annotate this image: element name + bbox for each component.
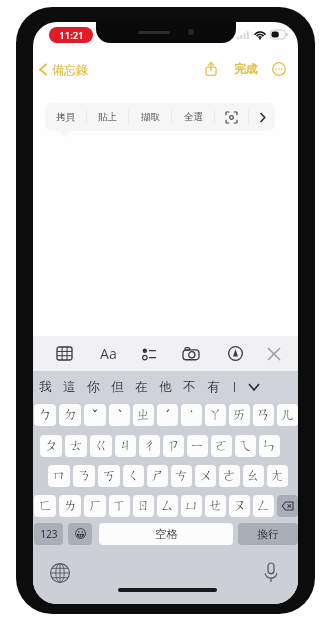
button[interactable]: Emoji — [68, 523, 92, 545]
button[interactable]: ㄏ — [84, 495, 106, 517]
button[interactable]: 他 — [153, 371, 177, 403]
button[interactable]: ㄣ — [259, 435, 280, 457]
button[interactable]: ㄈ — [34, 495, 56, 517]
button[interactable]: ㄍ — [90, 435, 112, 457]
button[interactable]: Hide keyboard — [262, 336, 286, 371]
staticText: 我 — [39, 379, 52, 395]
button[interactable]: Checklist — [137, 336, 161, 371]
staticText: 換行 — [257, 527, 279, 541]
staticText: ˙ — [190, 406, 193, 425]
button[interactable]: More options — [270, 60, 288, 78]
staticText: 你 — [87, 379, 100, 395]
button[interactable]: ㄓ — [133, 404, 154, 426]
button[interactable]: 備忘錄 — [39, 62, 88, 77]
staticText: 他 — [159, 379, 172, 395]
button[interactable]: Insert table — [52, 336, 76, 371]
button[interactable]: 換行 — [238, 523, 298, 545]
staticText: ㄥ — [256, 497, 271, 515]
button[interactable]: 完成 — [234, 62, 257, 76]
button[interactable]: Markup — [223, 336, 247, 371]
button[interactable]: ㄅ — [34, 404, 56, 426]
button[interactable]: ㄟ — [235, 435, 256, 457]
button[interactable]: ˙ — [181, 404, 202, 426]
staticText: ㄍ — [94, 437, 109, 455]
button[interactable]: ㄇ — [48, 465, 70, 487]
button[interactable]: ㄠ — [243, 465, 264, 487]
staticText: ㄚ — [208, 406, 223, 424]
button[interactable]: ㄘ — [171, 465, 192, 487]
staticText: ㄝ — [208, 497, 223, 515]
button[interactable]: 有 — [201, 371, 225, 403]
staticText: ㄉ — [63, 406, 78, 424]
button[interactable]: ㄔ — [139, 435, 160, 457]
button[interactable]: ㄞ — [229, 404, 250, 426]
button[interactable]: ㄡ — [229, 495, 250, 517]
staticText: ㄆ — [44, 437, 59, 455]
button[interactable]: ㄩ — [181, 495, 202, 517]
button[interactable]: ㄌ — [59, 495, 81, 517]
button[interactable]: 但 — [105, 371, 129, 403]
button[interactable]: ㄑ — [123, 465, 144, 487]
button[interactable]: ㄆ — [40, 435, 62, 457]
button[interactable]: 你 — [81, 371, 105, 403]
staticText: ㄎ — [102, 467, 117, 485]
staticText: 備忘錄 — [52, 62, 88, 77]
button[interactable]: 123 — [34, 523, 63, 545]
button[interactable]: ㄜ — [219, 465, 240, 487]
button[interactable]: ㄐ — [115, 435, 136, 457]
button[interactable]: 擷取 — [129, 103, 171, 131]
staticText: 😀 — [74, 527, 87, 541]
button[interactable]: ˊ — [157, 404, 178, 426]
button[interactable]: Dictation — [259, 560, 283, 584]
staticText: ㄣ — [262, 437, 277, 455]
button[interactable]: ㄝ — [205, 495, 226, 517]
staticText: 123 — [40, 527, 58, 541]
staticText: ㄞ — [232, 406, 247, 424]
button[interactable]: 拷貝 — [45, 103, 86, 131]
button[interactable]: ˋ — [109, 404, 130, 426]
button[interactable]: Switch keyboard — [48, 561, 72, 585]
button[interactable]: ˇ — [84, 404, 106, 426]
button[interactable]: 不 — [177, 371, 201, 403]
staticText: ㄕ — [150, 467, 165, 485]
staticText: ㄦ — [280, 406, 295, 424]
button[interactable]: Delete — [277, 495, 298, 517]
button[interactable]: ㄥ — [253, 495, 274, 517]
button[interactable]: ㄉ — [59, 404, 81, 426]
button[interactable]: ㄗ — [163, 435, 184, 457]
button[interactable]: Scan text — [215, 103, 248, 131]
button[interactable]: Next — [249, 103, 275, 131]
button[interactable]: More candidates — [244, 371, 263, 403]
button[interactable]: ㄙ — [157, 495, 178, 517]
staticText: ㄤ — [270, 467, 285, 485]
button[interactable]: 我 — [33, 371, 57, 403]
staticText: ˋ — [118, 406, 122, 425]
staticText: ㄑ — [126, 467, 141, 485]
button[interactable]: ㄎ — [98, 465, 120, 487]
button[interactable]: Share — [201, 59, 221, 79]
button[interactable]: 在 — [129, 371, 153, 403]
button[interactable]: ㄋ — [73, 465, 95, 487]
button[interactable]: 全選 — [172, 103, 214, 131]
button[interactable]: ㄦ — [277, 404, 298, 426]
staticText: ㄧ — [190, 437, 205, 455]
staticText: ˊ — [166, 406, 170, 425]
button[interactable]: ㄢ — [253, 404, 274, 426]
button[interactable]: 這 — [57, 371, 81, 403]
button[interactable]: ㄖ — [133, 495, 154, 517]
staticText: ㄛ — [214, 437, 229, 455]
button[interactable]: ㄧ — [187, 435, 208, 457]
button[interactable]: Camera — [179, 336, 203, 371]
button[interactable]: 空格 — [99, 523, 233, 545]
button[interactable]: ㄚ — [205, 404, 226, 426]
button[interactable]: 貼上 — [87, 103, 128, 131]
button[interactable]: ㄛ — [211, 435, 232, 457]
button[interactable]: ㄒ — [109, 495, 130, 517]
button[interactable]: ㄨ — [195, 465, 216, 487]
button[interactable]: Text format — [96, 336, 120, 371]
button[interactable]: ㄕ — [147, 465, 168, 487]
staticText: ㄌ — [63, 497, 78, 515]
button[interactable]: ㄊ — [65, 435, 87, 457]
staticText: ㄖ — [136, 497, 151, 515]
button[interactable]: ㄤ — [267, 465, 288, 487]
